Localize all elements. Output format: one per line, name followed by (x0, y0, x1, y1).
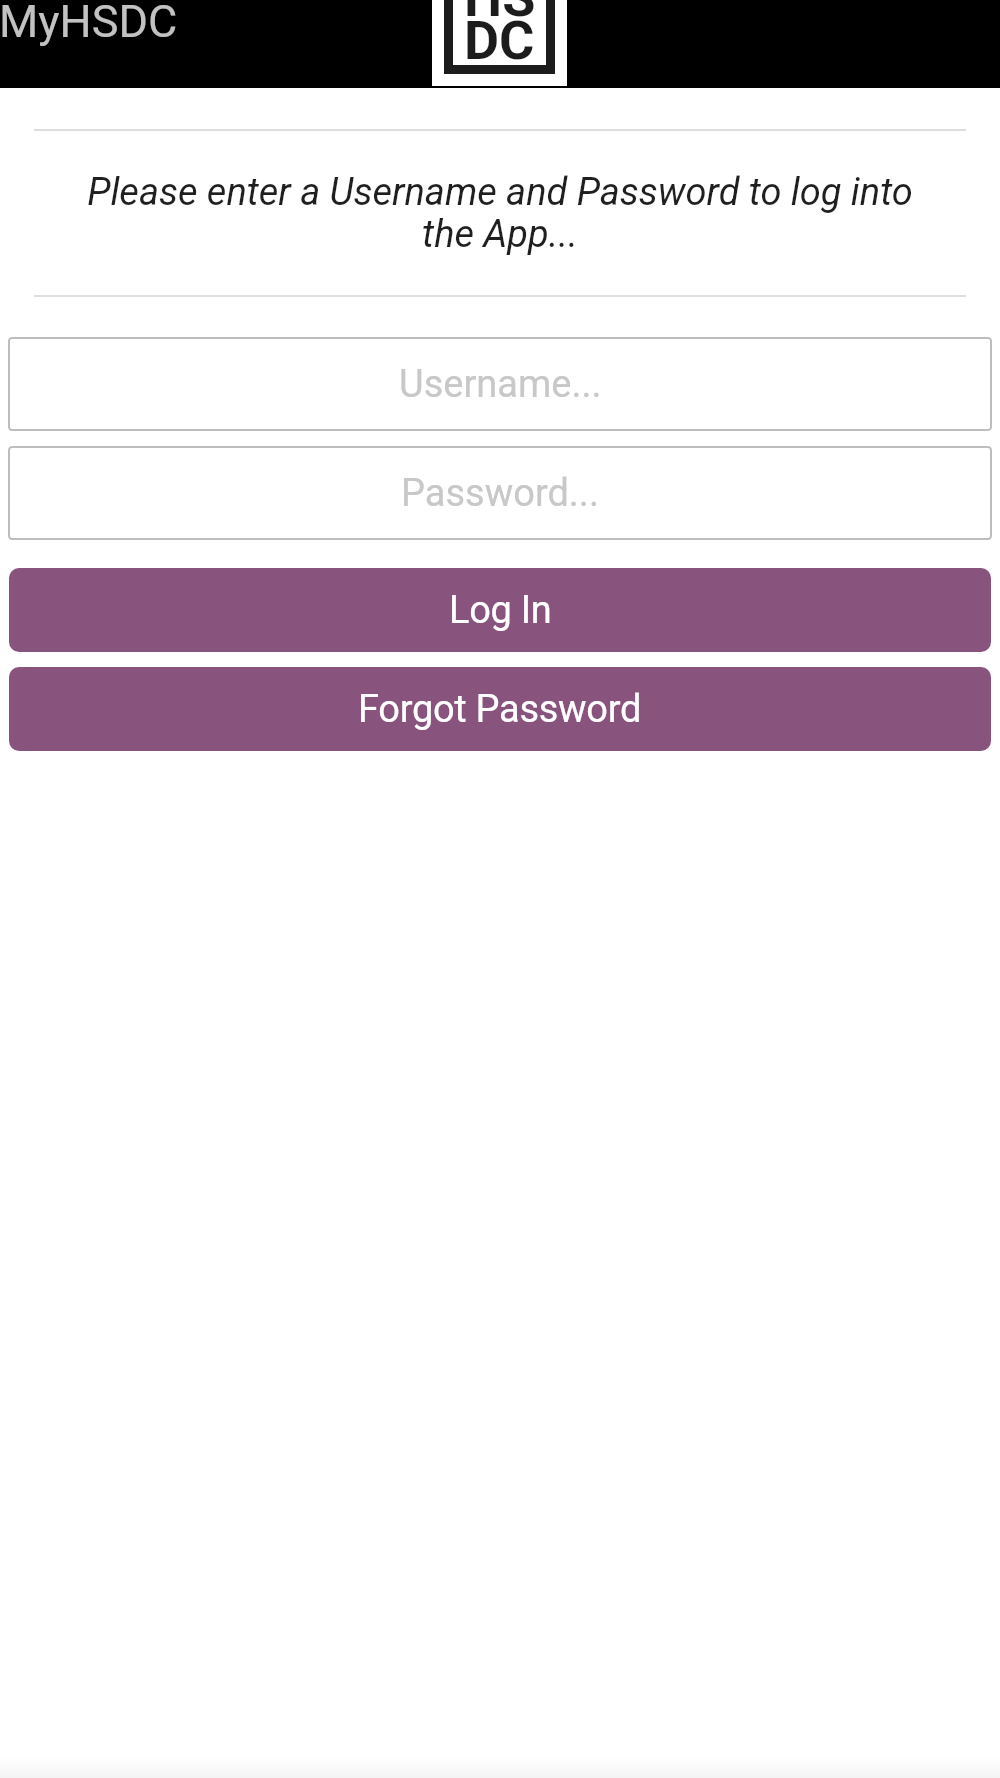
staticText: Log In (449, 588, 552, 633)
staticText: DC (464, 9, 535, 72)
button[interactable]: Password... (8, 446, 992, 540)
staticText: Username... (399, 362, 602, 407)
staticText: HS (464, 0, 536, 29)
staticText: Password... (401, 471, 599, 516)
staticText: Forgot Password (358, 687, 642, 732)
button[interactable]: Log In (9, 568, 991, 652)
staticText: Please enter a Username and Password to … (70, 170, 930, 257)
other: HSDC logo (432, 0, 567, 86)
button[interactable]: Username... (8, 337, 992, 431)
button[interactable]: Forgot Password (9, 667, 991, 751)
staticText: MyHSDC (0, 0, 178, 48)
